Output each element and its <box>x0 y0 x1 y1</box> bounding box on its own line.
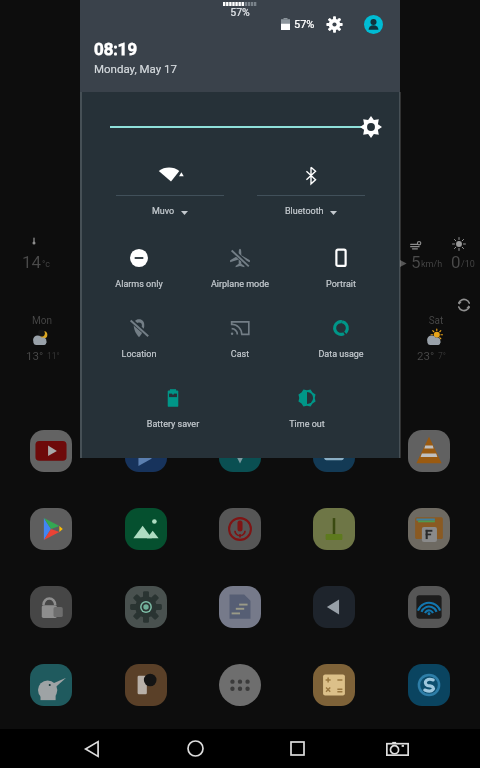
staticText: Muvo <box>152 206 175 217</box>
button[interactable]: Kiwi <box>30 664 72 706</box>
button[interactable]: Portrait <box>291 236 391 294</box>
button[interactable]: Time out <box>257 376 357 434</box>
staticText: km/h <box>421 259 443 270</box>
button[interactable]: Settings <box>125 586 167 628</box>
staticText: Alarms only <box>89 279 189 290</box>
button[interactable]: Back <box>56 729 127 768</box>
button[interactable]: All apps <box>219 664 261 706</box>
button[interactable]: Play Store <box>30 508 72 550</box>
staticText: 14 <box>22 252 42 272</box>
button[interactable]: User profile <box>364 15 383 34</box>
staticText: Data usage <box>291 349 391 360</box>
button[interactable]: Recorder <box>219 508 261 550</box>
staticText: Battery saver <box>123 419 223 430</box>
staticText: Time out <box>257 419 357 430</box>
staticText: 11° <box>47 351 60 361</box>
staticText: Sat <box>404 315 468 327</box>
button[interactable]: Skype <box>408 664 450 706</box>
staticText: Portrait <box>291 279 391 290</box>
button[interactable]: VLC <box>408 430 450 472</box>
button[interactable]: WiFi <box>408 586 450 628</box>
staticText: 57% <box>210 6 270 18</box>
button[interactable]: Settings <box>326 16 343 33</box>
button[interactable]: YouTube <box>30 430 72 472</box>
staticText: 7° <box>438 351 446 361</box>
staticText: Bluetooth <box>285 206 324 217</box>
button[interactable]: Files <box>408 508 450 550</box>
button[interactable]: Home <box>160 729 231 768</box>
button[interactable]: App <box>219 430 261 472</box>
staticText: Cast <box>190 349 290 360</box>
button[interactable]: Recent apps <box>262 729 333 768</box>
button[interactable]: Bluetooth <box>240 150 400 222</box>
staticText: °c <box>42 259 51 270</box>
staticText: Monday, May 17 <box>94 62 177 75</box>
button[interactable]: Camera <box>362 729 433 768</box>
button[interactable]: Brightness <box>80 112 400 144</box>
staticText: 23° <box>417 349 435 362</box>
staticText: 13° <box>26 349 44 362</box>
button[interactable]: Notes <box>313 508 355 550</box>
button[interactable]: Gallery <box>125 508 167 550</box>
button[interactable]: Battery saver <box>123 376 223 434</box>
button[interactable]: Airplane mode <box>190 236 290 294</box>
button[interactable]: Player <box>125 430 167 472</box>
button[interactable]: Calculator <box>313 664 355 706</box>
button[interactable]: Docs <box>219 586 261 628</box>
button[interactable]: Data usage <box>291 306 391 364</box>
button[interactable]: Location <box>89 306 189 364</box>
button[interactable]: App <box>313 430 355 472</box>
staticText: Location <box>89 349 189 360</box>
staticText: 57% <box>294 18 330 31</box>
staticText: 08:19 <box>94 39 138 59</box>
staticText: 0 <box>451 252 461 272</box>
button[interactable]: Alarms only <box>89 236 189 294</box>
button[interactable]: App <box>125 664 167 706</box>
staticText: 5 <box>411 252 421 272</box>
button[interactable]: Cast <box>190 306 290 364</box>
staticText: /10 <box>461 259 475 270</box>
button[interactable]: Media <box>313 586 355 628</box>
staticText: Airplane mode <box>190 279 290 290</box>
button[interactable]: Lock <box>30 586 72 628</box>
staticText: Mon <box>10 315 74 327</box>
button[interactable]: Wi-Fi Muvo <box>80 150 240 222</box>
